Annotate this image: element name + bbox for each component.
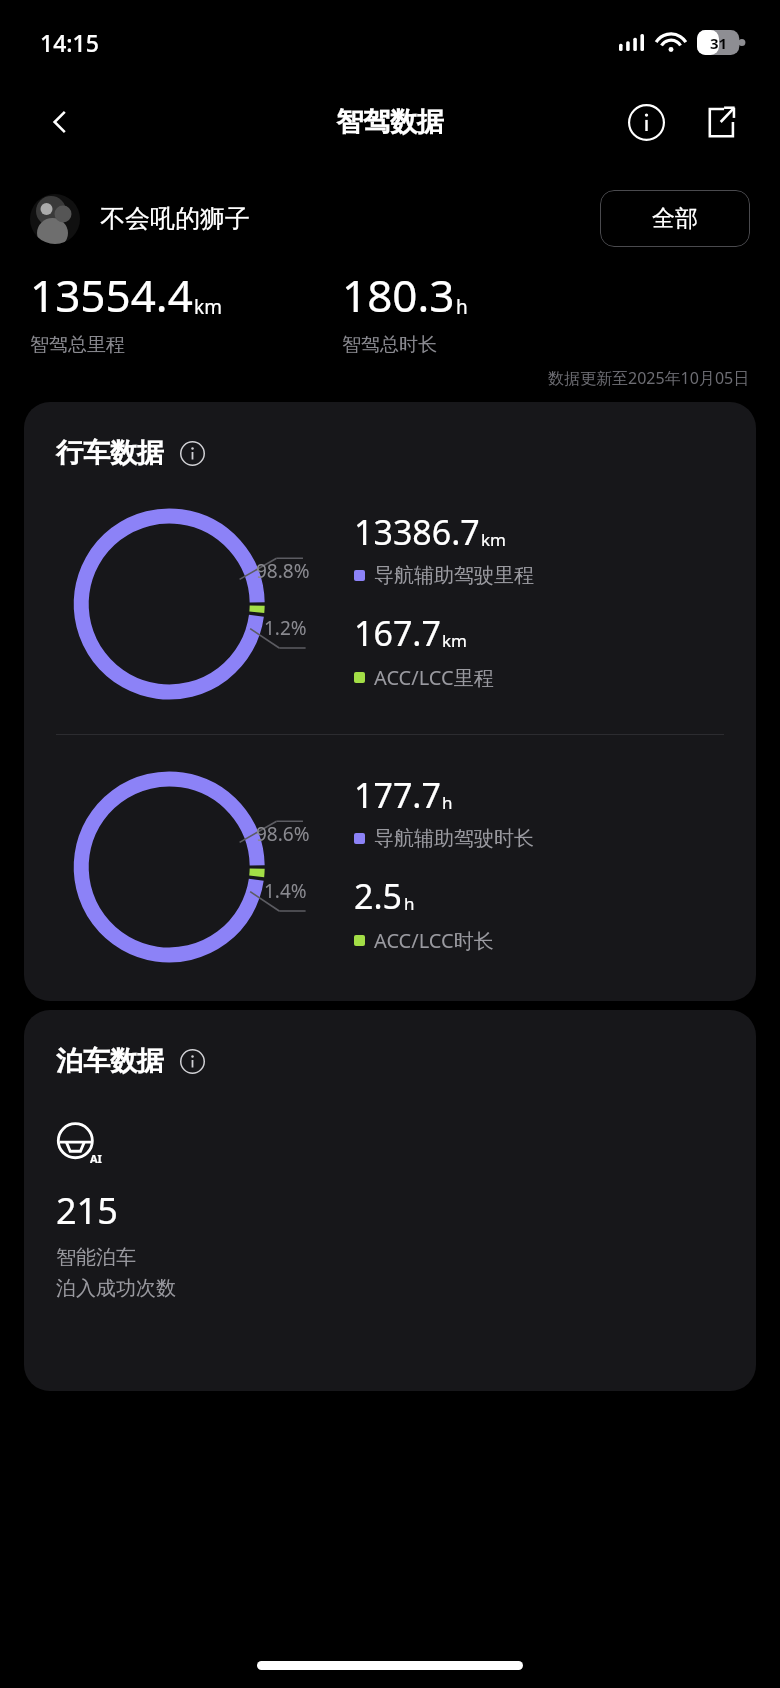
staticText: km — [194, 294, 222, 320]
staticText: ACC/LCC时长 — [374, 927, 494, 954]
staticText: 不会吼的狮子 — [100, 203, 250, 234]
staticText: 智驾总里程 — [30, 333, 125, 357]
staticText: km — [481, 528, 506, 551]
staticText: 180.3 — [342, 265, 455, 325]
staticText: 13554.4 — [30, 265, 193, 325]
staticText: 1.4% — [264, 878, 307, 904]
staticText: 全部 — [652, 204, 698, 233]
staticText: 177.7 — [354, 772, 441, 818]
button[interactable]: Back — [32, 94, 88, 150]
staticText: 导航辅助驾驶时长 — [374, 826, 534, 851]
staticText: 13386.7 — [354, 509, 480, 555]
button[interactable]: Info — [618, 94, 674, 150]
staticText: 98.6% — [256, 821, 310, 847]
staticText: 31 — [710, 33, 728, 53]
staticText: 智驾数据 — [336, 105, 444, 139]
button[interactable]: Info — [176, 437, 208, 469]
staticText: 2.5 — [354, 873, 403, 919]
staticText: AI — [90, 1151, 102, 1166]
staticText: ACC/LCC里程 — [374, 664, 494, 691]
staticText: km — [442, 629, 467, 652]
button[interactable]: Share — [692, 94, 748, 150]
staticText: 167.7 — [354, 610, 441, 656]
staticText: 泊车数据 — [56, 1044, 164, 1078]
staticText: h — [456, 294, 468, 320]
staticText: 行车数据 — [56, 436, 164, 470]
button[interactable]: Info — [176, 1045, 208, 1077]
staticText: 导航辅助驾驶里程 — [374, 563, 534, 588]
staticText: 98.8% — [256, 558, 310, 584]
staticText: 数据更新至2025年10月05日 — [548, 367, 750, 389]
staticText: 1.2% — [264, 615, 307, 641]
button[interactable]: 泊车数据 — [24, 1010, 756, 1391]
staticText: 泊入成功次数 — [56, 1276, 176, 1301]
button[interactable]: 行车数据 — [24, 402, 756, 1001]
staticText: 智驾总时长 — [342, 333, 437, 357]
staticText: 14:15 — [40, 27, 99, 58]
staticText: 215 — [56, 1186, 118, 1235]
staticText: 智能泊车 — [56, 1245, 136, 1270]
staticText: h — [442, 791, 453, 814]
button[interactable]: 全部 — [600, 190, 750, 247]
staticText: h — [404, 892, 415, 915]
